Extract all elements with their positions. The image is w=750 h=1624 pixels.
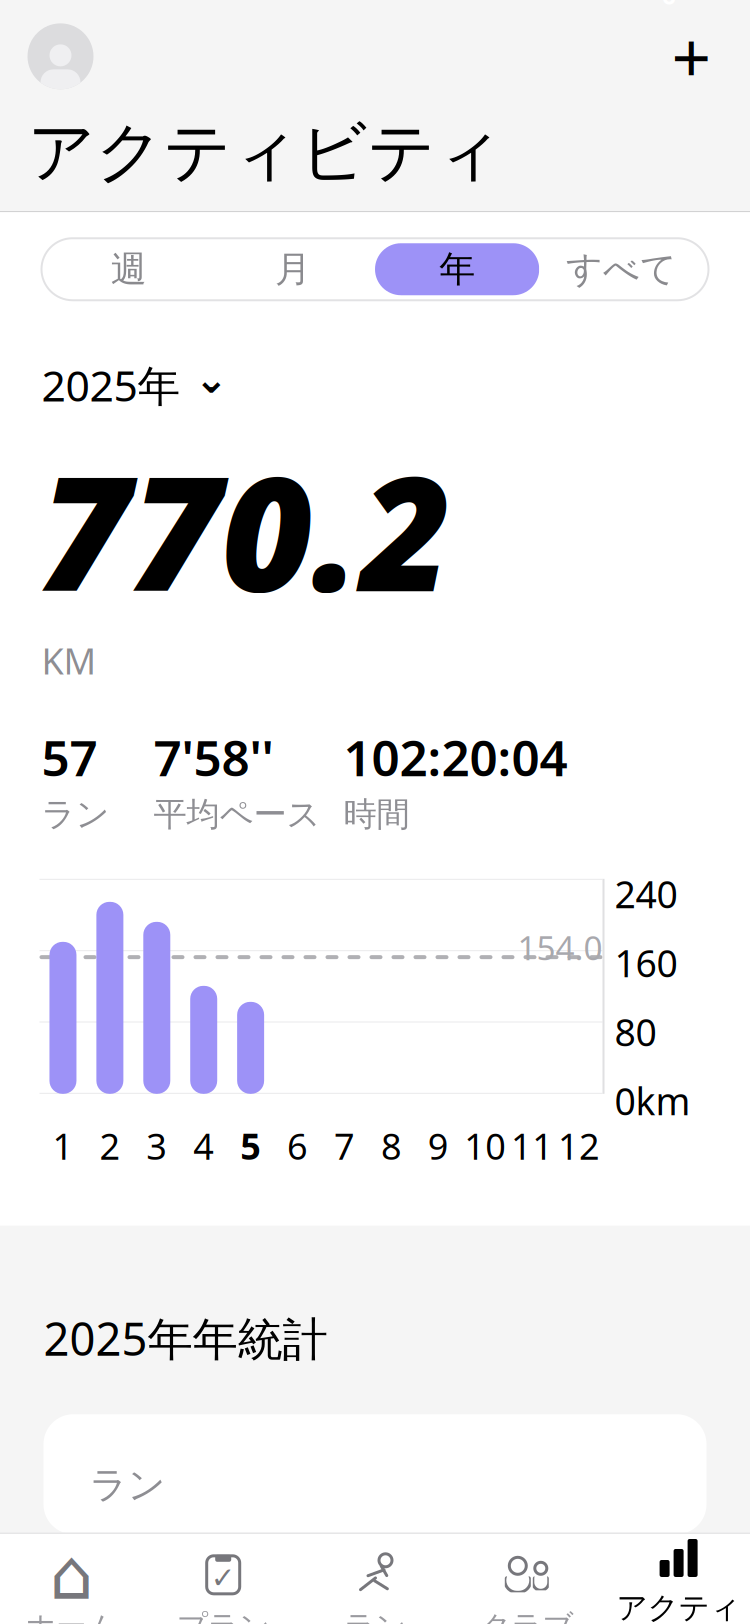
- staticText: 月: [275, 247, 311, 291]
- button[interactable]: Add: [660, 25, 722, 87]
- staticText: すべて: [566, 247, 677, 291]
- button[interactable]: 月: [211, 243, 375, 295]
- button[interactable]: ⟩: [299, 1552, 451, 1624]
- staticText: ホーム: [25, 1608, 118, 1624]
- staticText: ラン: [89, 1462, 165, 1508]
- staticText: プラン: [177, 1608, 270, 1624]
- staticText: 3: [146, 1122, 167, 1170]
- staticText: 11: [511, 1122, 553, 1170]
- staticText: ラン: [344, 1608, 406, 1624]
- staticText: +: [671, 10, 711, 102]
- staticText: KM: [41, 637, 96, 684]
- button[interactable]: Profile: [27, 23, 93, 89]
- staticText: ✓: [211, 1561, 236, 1594]
- staticText: ⟩: [374, 1574, 375, 1576]
- button[interactable]: ✓: [147, 1552, 299, 1624]
- staticText: 12: [558, 1122, 600, 1170]
- staticText: クラブ: [480, 1608, 573, 1624]
- staticText: 160: [614, 938, 677, 988]
- staticText: ラン: [41, 794, 109, 835]
- staticText: 770.2: [39, 426, 451, 634]
- staticText: 7: [334, 1122, 355, 1170]
- staticText: 240: [614, 869, 677, 919]
- button[interactable]: アクティビティ: [603, 1533, 750, 1624]
- staticText: 2025年年統計: [43, 1308, 327, 1368]
- staticText: 80: [614, 1007, 656, 1057]
- staticText: 7'58'': [153, 724, 273, 790]
- staticText: 8: [381, 1122, 402, 1170]
- button[interactable]: クラブ: [451, 1552, 603, 1624]
- button[interactable]: ⌂: [0, 1552, 147, 1624]
- staticText: 4: [193, 1122, 214, 1170]
- staticText: 2025年: [41, 357, 180, 413]
- staticText: 0km: [614, 1076, 690, 1126]
- staticText: 年: [439, 247, 475, 291]
- button[interactable]: 年: [375, 243, 539, 295]
- staticText: アクティビティ: [617, 1589, 741, 1624]
- button[interactable]: すべて: [539, 243, 703, 295]
- staticText: 2: [99, 1122, 120, 1170]
- staticText: 57: [41, 724, 97, 790]
- staticText: 9: [428, 1122, 449, 1170]
- staticText: 102:20:04: [343, 724, 567, 790]
- staticText: 10: [464, 1122, 506, 1170]
- button[interactable]: 2025年: [0, 300, 750, 414]
- staticText: アクティビティ: [27, 111, 503, 193]
- staticText: 時間: [343, 794, 409, 835]
- staticText: 66: [662, 0, 676, 11]
- staticText: 6: [287, 1122, 308, 1170]
- staticText: 平均ペース: [153, 794, 320, 835]
- staticText: 1: [52, 1122, 73, 1170]
- staticText: 週: [111, 247, 147, 291]
- button[interactable]: 週: [46, 243, 211, 295]
- staticText: ⌂: [49, 1535, 93, 1614]
- staticText: 5: [240, 1122, 261, 1170]
- staticText: 154.0: [517, 925, 602, 969]
- staticText: ⌄: [194, 356, 228, 402]
